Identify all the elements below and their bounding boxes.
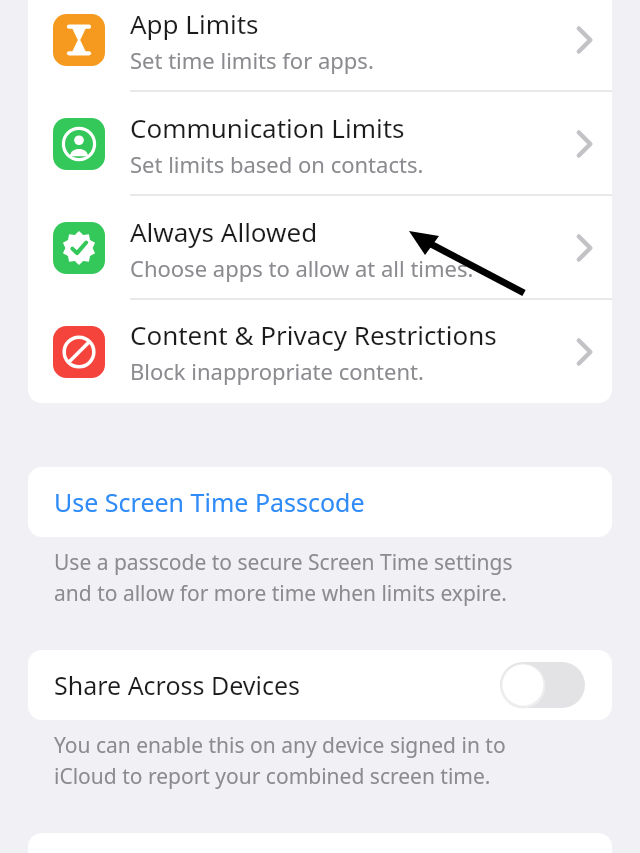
staticText: App Limits (130, 6, 259, 41)
staticText: Communication Limits (130, 110, 405, 145)
staticText: Choose apps to allow at all times. (130, 253, 474, 283)
button[interactable]: App Limits (28, 0, 612, 92)
staticText: Content & Privacy Restrictions (130, 317, 497, 352)
button[interactable]: Content & Privacy Restrictions (28, 300, 612, 403)
staticText: Share Across Devices (54, 668, 301, 702)
button[interactable]: Share Across Devices (28, 650, 612, 720)
staticText: Use a passcode to secure Screen Time set… (54, 548, 614, 607)
staticText: You can enable this on any device signed… (54, 731, 614, 790)
button[interactable]: Always Allowed (28, 196, 612, 300)
staticText: Set limits based on contacts. (130, 149, 424, 179)
button[interactable]: Communication Limits (28, 92, 612, 196)
staticText: Always Allowed (130, 214, 318, 249)
staticText: Block inappropriate content. (130, 356, 424, 386)
button[interactable]: Use Screen Time Passcode (28, 467, 612, 537)
staticText: Use Screen Time Passcode (54, 485, 365, 519)
button[interactable]: Share Across Devices toggle, off (500, 662, 585, 708)
staticText: Set time limits for apps. (130, 45, 374, 75)
